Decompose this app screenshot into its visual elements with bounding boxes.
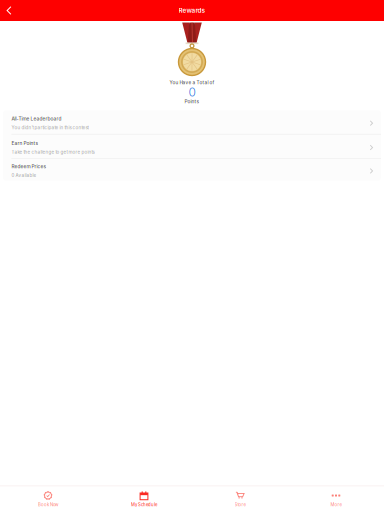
staticText: Redeem Prices: [11, 164, 46, 169]
staticText: Take the challenge to get more points: [11, 149, 94, 155]
button[interactable]: My Schedule: [96, 491, 192, 507]
staticText: 0 Available: [11, 173, 36, 178]
button[interactable]: Earn Points: [3, 135, 381, 159]
button[interactable]: Book Now: [0, 491, 96, 507]
staticText: You Have a Total of: [169, 80, 214, 85]
staticText: You didn't participate in this contest.: [11, 125, 89, 130]
staticText: Book Now: [38, 502, 58, 507]
button[interactable]: Redeem Prices: [3, 159, 381, 181]
staticText: Rewards: [178, 7, 205, 14]
staticText: Earn Points: [11, 140, 38, 146]
staticText: More: [330, 502, 341, 507]
button[interactable]: Store: [192, 491, 288, 507]
staticText: Store: [234, 502, 245, 507]
button[interactable]: More: [288, 491, 384, 507]
staticText: 0: [188, 85, 195, 99]
staticText: All-Time Leaderboard: [11, 116, 61, 122]
button[interactable]: Back: [0, 0, 18, 21]
staticText: My Schedule: [131, 502, 157, 507]
staticText: Points: [184, 99, 199, 104]
button[interactable]: All-Time Leaderboard: [3, 110, 381, 135]
